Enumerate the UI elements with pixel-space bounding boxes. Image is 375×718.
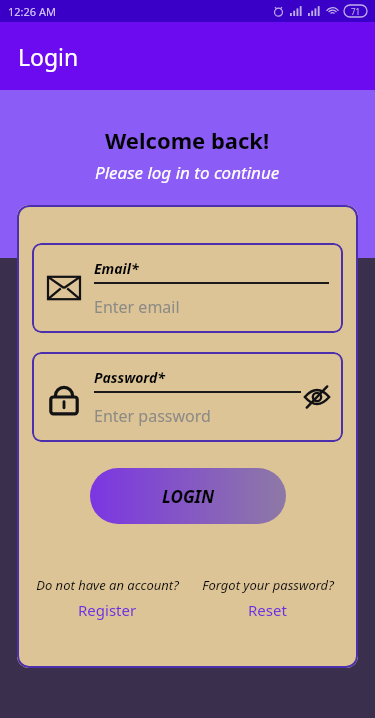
staticText: 71 [351,6,361,17]
staticText: Enter password [94,405,211,427]
staticText: Please log in to continue [95,161,280,184]
button[interactable]: Register [72,598,143,622]
staticText: Password* [94,368,165,387]
staticText: Login [18,41,79,72]
staticText: Email* [94,259,139,278]
staticText: Forgot your password? [202,576,334,594]
button[interactable]: Email* [32,243,343,333]
staticText: Do not have an account? [36,576,179,594]
staticText: Enter email [94,296,180,318]
staticText: Welcome back! [105,125,270,155]
button[interactable]: Show password [301,381,333,413]
button[interactable]: Reset [242,598,293,622]
staticText: Register [78,600,137,620]
button[interactable]: Password* [32,352,343,442]
staticText: 12:26 AM [8,4,56,19]
staticText: LOGIN [162,485,215,508]
button[interactable]: LOGIN [90,468,286,524]
staticText: Reset [248,600,287,620]
